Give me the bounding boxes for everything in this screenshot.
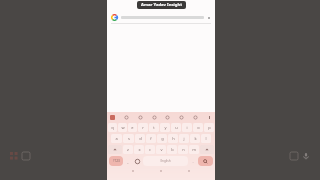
staticText: m	[192, 147, 196, 152]
button[interactable]: Nav 0	[131, 169, 135, 173]
staticText: .	[192, 159, 194, 164]
button[interactable]: y	[160, 123, 170, 132]
staticText: b	[171, 147, 174, 152]
staticText: u	[175, 125, 178, 130]
staticText: ?123	[113, 159, 120, 163]
button[interactable]: r	[138, 123, 148, 132]
button[interactable]: Expand toolbar	[207, 115, 212, 120]
staticText: g	[161, 136, 164, 141]
staticText: e	[131, 125, 134, 130]
button[interactable]: h	[168, 134, 178, 143]
button[interactable]: p	[204, 123, 214, 132]
button[interactable]: a	[111, 134, 122, 143]
button[interactable]: Toolbar item 5	[193, 115, 198, 120]
staticText: i	[186, 125, 188, 130]
button[interactable]: z	[123, 145, 133, 154]
staticText: c	[149, 147, 151, 152]
button[interactable]: w	[118, 123, 127, 132]
button[interactable]: x	[134, 145, 144, 154]
staticText: v	[160, 147, 163, 152]
button[interactable]: s	[123, 134, 134, 143]
button[interactable]: u	[171, 123, 181, 132]
staticText: f	[150, 136, 152, 141]
button[interactable]: f	[146, 134, 156, 143]
button[interactable]: n	[178, 145, 188, 154]
staticText: h	[172, 136, 175, 141]
button[interactable]: j	[179, 134, 189, 143]
button[interactable]: Toolbar item 2	[152, 115, 157, 120]
staticText: o	[197, 125, 200, 130]
staticText: x	[138, 147, 141, 152]
button[interactable]: g	[157, 134, 167, 143]
staticText: q	[111, 125, 114, 130]
staticText: a	[115, 136, 118, 141]
staticText: ,	[127, 159, 129, 164]
button[interactable]: c	[145, 145, 155, 154]
staticText: Amar Yadav Insight	[141, 2, 182, 8]
button[interactable]: Space	[143, 156, 188, 166]
staticText: w	[121, 125, 125, 130]
button[interactable]: Backspace	[200, 145, 214, 154]
button[interactable]: Toolbar item 1	[138, 115, 143, 120]
staticText: d	[139, 136, 142, 141]
button[interactable]: Nav 1	[159, 169, 163, 173]
button[interactable]: App	[20, 150, 32, 162]
staticText: y	[164, 125, 167, 130]
button[interactable]: q	[108, 123, 117, 132]
staticText: k	[194, 136, 197, 141]
button[interactable]: v	[156, 145, 166, 154]
staticText: t	[153, 125, 155, 130]
button[interactable]: All apps	[8, 150, 20, 162]
button[interactable]: Toolbar item 4	[179, 115, 184, 120]
button[interactable]: Shift	[108, 145, 122, 154]
button[interactable]: Amar Yadav Insight	[137, 1, 186, 9]
button[interactable]: Voice search	[300, 150, 312, 162]
button[interactable]: Toolbar item 0	[124, 115, 129, 120]
button[interactable]: k	[190, 134, 200, 143]
button[interactable]: Emoji	[133, 156, 142, 166]
staticText: r	[142, 125, 144, 130]
button[interactable]: t	[149, 123, 159, 132]
staticText: s	[128, 136, 130, 141]
staticText: j	[183, 136, 185, 141]
staticText: p	[208, 125, 211, 130]
button[interactable]: e	[128, 123, 137, 132]
button[interactable]: m	[189, 145, 199, 154]
staticText: z	[127, 147, 129, 152]
button[interactable]: Close	[207, 16, 211, 20]
button[interactable]: Close	[111, 12, 211, 23]
button[interactable]: b	[167, 145, 177, 154]
staticText: l	[205, 136, 207, 141]
button[interactable]: l	[201, 134, 211, 143]
button[interactable]: ?123	[109, 156, 123, 166]
staticText: English	[160, 159, 171, 163]
staticText: n	[182, 147, 185, 152]
button[interactable]: d	[135, 134, 145, 143]
button[interactable]: App	[288, 150, 300, 162]
button[interactable]: i	[182, 123, 192, 132]
button[interactable]: Nav 2	[187, 169, 191, 173]
button[interactable]: Search	[198, 156, 213, 166]
button[interactable]: o	[193, 123, 203, 132]
button[interactable]: Keyboard settings	[110, 115, 115, 120]
button[interactable]: Toolbar item 3	[165, 115, 170, 120]
